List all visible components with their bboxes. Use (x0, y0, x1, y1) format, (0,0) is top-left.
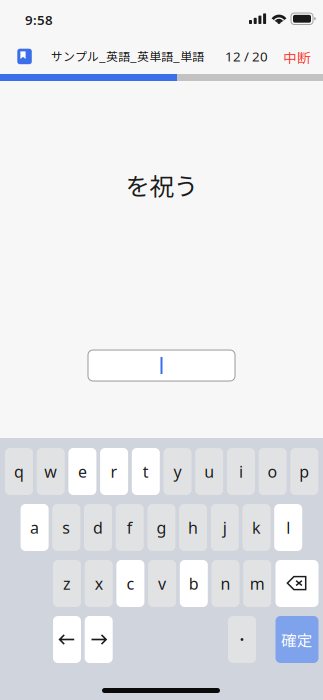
staticText: 12 / 20 (225, 47, 268, 65)
staticText: t (143, 461, 149, 482)
button[interactable]: i (227, 448, 255, 495)
button[interactable]: t (132, 448, 160, 495)
staticText: g (156, 517, 166, 538)
button[interactable]: Previous (53, 616, 81, 663)
button[interactable]: a (21, 504, 49, 551)
button[interactable]: m (243, 560, 271, 607)
staticText: e (78, 461, 87, 482)
button[interactable]: Deck (17, 49, 32, 64)
button[interactable]: h (179, 504, 207, 551)
staticText: 9:58 (25, 11, 53, 29)
staticText: v (158, 573, 166, 594)
button[interactable]: o (259, 448, 287, 495)
button[interactable]: l (274, 504, 302, 551)
button[interactable]: j (211, 504, 239, 551)
staticText: y (173, 461, 181, 482)
button[interactable]: w (37, 448, 65, 495)
button[interactable]: e (68, 448, 96, 495)
staticText: p (299, 461, 309, 482)
button[interactable]: x (85, 560, 113, 607)
button[interactable]: 確定 (275, 616, 318, 663)
staticText: f (127, 517, 133, 538)
staticText: w (44, 461, 57, 482)
staticText: a (30, 517, 39, 538)
button[interactable]: v (148, 560, 176, 607)
staticText: m (250, 573, 265, 594)
staticText: 確定 (281, 628, 313, 651)
staticText: i (239, 461, 243, 482)
staticText: b (189, 573, 199, 594)
button[interactable]: Period (228, 616, 256, 663)
button[interactable]: n (211, 560, 239, 607)
button[interactable]: d (84, 504, 112, 551)
button[interactable]: y (163, 448, 191, 495)
staticText: c (126, 573, 134, 594)
staticText: x (95, 573, 103, 594)
staticText: を祝う (125, 167, 197, 203)
button[interactable]: c (116, 560, 144, 607)
button[interactable]: p (290, 448, 318, 495)
button[interactable]: Delete (275, 560, 318, 607)
button[interactable]: b (180, 560, 208, 607)
button[interactable]: u (195, 448, 223, 495)
button[interactable]: r (100, 448, 128, 495)
staticText: s (62, 517, 70, 538)
staticText: サンプル_英語_英単語_単語 (51, 47, 204, 64)
button[interactable]: z (53, 560, 81, 607)
staticText: 中断 (283, 47, 311, 67)
button[interactable]: f (116, 504, 144, 551)
staticText: q (14, 461, 24, 482)
button[interactable]: g (147, 504, 175, 551)
button[interactable]: s (52, 504, 80, 551)
staticText: u (204, 461, 214, 482)
staticText: n (220, 573, 230, 594)
staticText: r (111, 461, 118, 482)
button[interactable]: 中断 (283, 47, 311, 67)
button[interactable]: Next (85, 616, 113, 663)
staticText: k (252, 517, 261, 538)
staticText: o (268, 461, 278, 482)
staticText: j (223, 517, 227, 538)
staticText: h (188, 517, 198, 538)
staticText: l (286, 517, 290, 538)
staticText: d (93, 517, 103, 538)
button[interactable]: q (5, 448, 33, 495)
button[interactable]: k (242, 504, 270, 551)
staticText: z (63, 573, 71, 594)
